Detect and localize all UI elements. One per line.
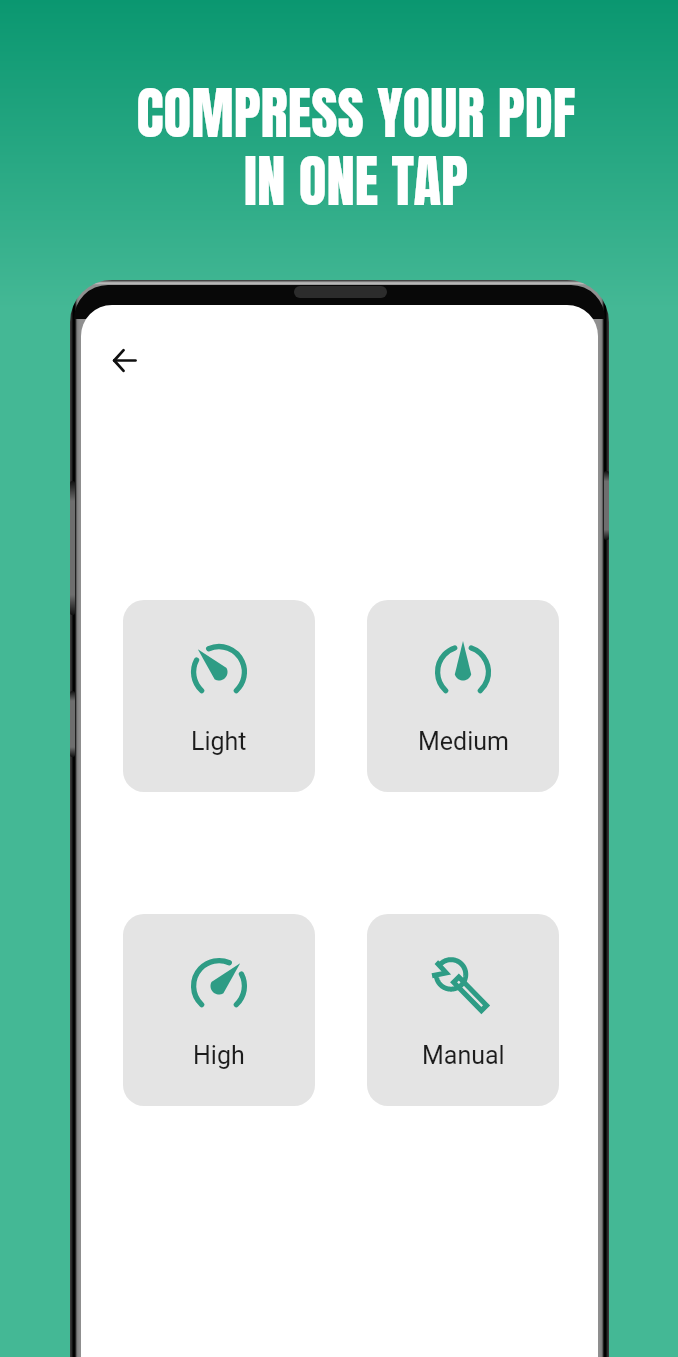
button[interactable]: Light xyxy=(123,600,315,792)
button[interactable]: High xyxy=(123,914,315,1106)
staticText: High xyxy=(193,1041,245,1070)
staticText: IN ONE TAP xyxy=(17,138,678,224)
staticText: Medium xyxy=(418,727,509,756)
button[interactable]: Back xyxy=(100,336,148,384)
staticText: Light xyxy=(191,727,247,756)
button[interactable]: Medium xyxy=(367,600,559,792)
staticText: COMPRESS YOUR PDF xyxy=(17,70,678,156)
button[interactable]: Manual xyxy=(367,914,559,1106)
staticText: Manual xyxy=(422,1041,505,1070)
